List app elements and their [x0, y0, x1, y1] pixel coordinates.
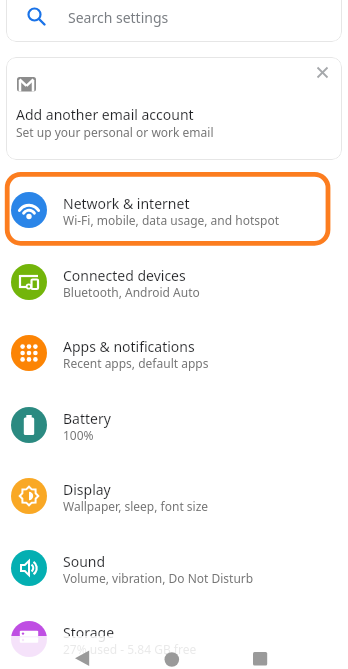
button[interactable]: Network & internet — [0, 174, 348, 246]
staticText: Add another email account — [16, 105, 194, 124]
staticText: Bluetooth, Android Auto — [63, 284, 200, 300]
button[interactable]: Battery — [0, 389, 348, 461]
staticText: Wallpaper, sleep, font size — [63, 498, 209, 514]
staticText: Set up your personal or work email — [16, 124, 214, 140]
button[interactable]: Add another email account — [6, 57, 342, 160]
button[interactable]: Apps & notifications — [0, 317, 348, 389]
button[interactable] — [236, 636, 284, 669]
staticText: Apps & notifications — [63, 337, 195, 356]
staticText: Display — [63, 480, 111, 499]
button[interactable]: Sound — [0, 532, 348, 604]
button[interactable] — [309, 59, 337, 87]
button[interactable] — [58, 636, 106, 669]
button[interactable]: Connected devices — [0, 246, 348, 318]
button[interactable]: Search settings — [6, 0, 342, 42]
button[interactable]: Display — [0, 460, 348, 532]
button[interactable] — [148, 636, 196, 669]
staticText: Recent apps, default apps — [63, 355, 209, 371]
staticText: Wi-Fi, mobile, data usage, and hotspot — [63, 212, 279, 228]
staticText: 100% — [63, 427, 94, 443]
staticText: Sound — [63, 552, 106, 571]
staticText: Network & internet — [63, 194, 190, 213]
staticText: Storage — [63, 623, 115, 642]
staticText: Connected devices — [63, 266, 186, 285]
button[interactable]: Storage — [0, 603, 348, 669]
staticText: Volume, vibration, Do Not Disturb — [63, 570, 254, 586]
staticText: 27% used - 5.84 GB free — [63, 641, 197, 657]
staticText: Search settings — [68, 8, 169, 27]
staticText: Battery — [63, 409, 111, 428]
